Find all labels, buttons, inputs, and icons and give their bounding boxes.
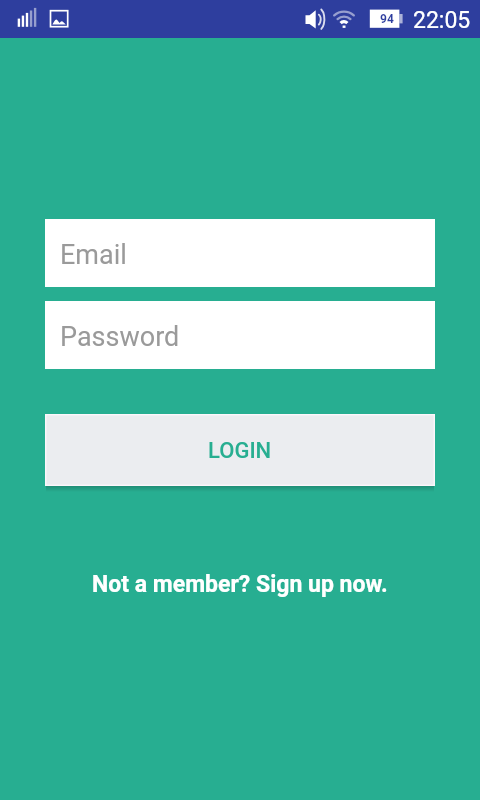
button[interactable]: Email bbox=[45, 219, 435, 287]
other: Status bar bbox=[0, 0, 480, 38]
button[interactable]: LOGIN bbox=[45, 414, 435, 492]
staticText: LOGIN bbox=[208, 438, 272, 464]
staticText: Password bbox=[60, 321, 180, 353]
staticText: Not a member? Sign up now. bbox=[92, 571, 388, 598]
staticText: 22:05 bbox=[413, 7, 471, 34]
staticText: Email bbox=[60, 239, 127, 271]
button[interactable]: Not a member? Sign up now. bbox=[80, 565, 400, 604]
button[interactable]: Password bbox=[45, 301, 435, 369]
staticText: 94 bbox=[380, 12, 394, 26]
